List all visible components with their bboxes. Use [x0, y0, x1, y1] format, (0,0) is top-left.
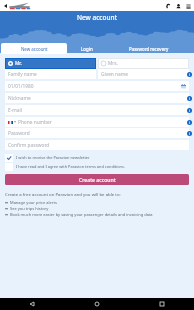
- button[interactable]: Nickname: [5, 93, 189, 103]
- staticText: Password: [8, 130, 30, 137]
- staticText: 01/01/1980: [8, 83, 34, 90]
- button[interactable]: Mrs.: [98, 58, 189, 69]
- staticText: Nickname: [8, 95, 31, 102]
- staticText: i: [189, 120, 191, 125]
- staticText: Confirm password: [8, 142, 50, 149]
- staticText: Manage your price alerts: [10, 200, 57, 205]
- button[interactable]: New account: [1, 43, 67, 54]
- staticText: Create account: [79, 176, 116, 183]
- staticText: E-mail: [8, 107, 22, 114]
- button[interactable]: Home: [91, 298, 103, 310]
- button[interactable]: Recent apps: [156, 298, 168, 310]
- staticText: Book much more easier by saving your pas…: [10, 212, 153, 217]
- button[interactable]: Back: [1, 1, 10, 10]
- button[interactable]: Password recovery: [106, 43, 192, 54]
- staticText: Phone number: [18, 119, 52, 126]
- button[interactable]: Account: [173, 1, 183, 11]
- button[interactable]: Given name: [98, 69, 189, 79]
- button[interactable]: Menu: [183, 1, 193, 11]
- button[interactable]: 01/01/1980: [5, 81, 189, 91]
- button[interactable]: Back: [26, 298, 38, 310]
- staticText: Create a free account on Paravion and yo…: [5, 191, 121, 197]
- button[interactable]: Create account: [5, 174, 189, 185]
- button[interactable]: Mr.: [5, 58, 96, 69]
- staticText: I wish to receive the Paravion newslette…: [16, 155, 90, 160]
- button[interactable]: Password: [5, 128, 189, 138]
- staticText: Mrs.: [108, 60, 118, 67]
- staticText: Mr.: [15, 60, 22, 67]
- staticText: New account: [21, 46, 48, 52]
- staticText: i: [189, 108, 191, 113]
- staticText: i: [189, 131, 191, 136]
- staticText: Given name: [101, 71, 128, 78]
- button[interactable]: More information: [187, 120, 192, 125]
- button[interactable]: I have read and I agree with Paravion te…: [5, 162, 189, 171]
- staticText: Login: [81, 46, 93, 52]
- button[interactable]: I wish to receive the Paravion newslette…: [5, 153, 189, 162]
- button[interactable]: More information: [187, 96, 192, 101]
- staticText: I have read and I agree with Paravion te…: [16, 164, 125, 169]
- button[interactable]: Login: [68, 43, 105, 54]
- staticText: i: [189, 72, 191, 77]
- button[interactable]: Family name: [5, 69, 96, 79]
- staticText: Password recovery: [129, 46, 169, 52]
- button[interactable]: More information: [187, 131, 192, 136]
- staticText: i: [189, 96, 191, 101]
- button[interactable]: More information: [187, 72, 192, 77]
- staticText: New account: [77, 13, 118, 22]
- button[interactable]: More information: [187, 108, 192, 113]
- staticText: See you trips history: [10, 206, 49, 211]
- staticText: Family name: [8, 71, 37, 78]
- button[interactable]: Call: [163, 1, 173, 11]
- button[interactable]: Phone number: [5, 117, 189, 127]
- button[interactable]: E-mail: [5, 105, 189, 115]
- button[interactable]: Confirm password: [5, 140, 189, 150]
